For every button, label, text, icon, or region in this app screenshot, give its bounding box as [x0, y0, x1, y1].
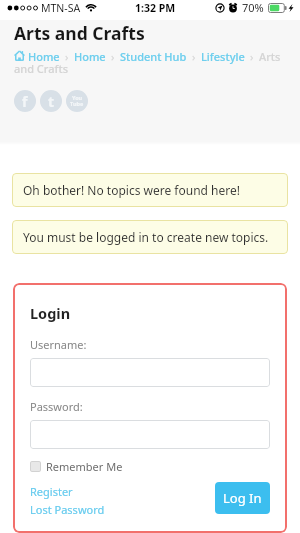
button[interactable]: YouTube — [66, 90, 88, 112]
staticText: Username: — [30, 337, 87, 352]
staticText: › — [192, 49, 196, 64]
staticText: Arts — [259, 49, 281, 64]
staticText: You must be logged in to create new topi… — [23, 229, 269, 245]
staticText: Register — [30, 484, 73, 499]
button[interactable]: Facebook — [14, 90, 36, 112]
staticText: Lost Password — [30, 502, 105, 517]
button[interactable]: Lost Password — [30, 502, 105, 517]
staticText: Arts and Crafts — [14, 21, 145, 45]
button[interactable] — [30, 358, 270, 387]
staticText: Tube — [70, 100, 84, 107]
staticText: Student Hub — [120, 49, 187, 64]
staticText: › — [65, 49, 69, 64]
staticText: Login — [30, 303, 71, 323]
staticText: Lifestyle — [201, 49, 245, 64]
button[interactable]: Lifestyle — [201, 49, 245, 64]
button[interactable]: Home — [74, 49, 106, 64]
button[interactable]: Home — [14, 50, 25, 61]
staticText: Oh bother! No topics were found here! — [23, 182, 240, 198]
button[interactable]: Twitter — [40, 90, 62, 112]
staticText: Password: — [30, 399, 83, 414]
staticText: Log In — [223, 489, 262, 507]
button[interactable]: Register — [30, 484, 73, 499]
staticText: 70% — [242, 0, 264, 15]
button[interactable]: Home — [28, 49, 60, 64]
staticText: Home — [74, 49, 106, 64]
button[interactable] — [30, 420, 270, 449]
staticText: MTN-SA — [41, 1, 81, 15]
staticText: t — [48, 92, 55, 111]
staticText: f — [22, 92, 28, 111]
staticText: › — [111, 49, 115, 64]
staticText: Home — [28, 49, 60, 64]
staticText: › — [250, 49, 254, 64]
staticText: and Crafts — [14, 61, 69, 76]
button[interactable]: Remember Me — [30, 459, 123, 474]
staticText: Remember Me — [46, 459, 123, 474]
button[interactable]: Log In — [215, 482, 270, 514]
button[interactable]: Student Hub — [120, 49, 187, 64]
staticText: 1:32 PM — [135, 1, 176, 15]
staticText: You — [72, 94, 83, 101]
